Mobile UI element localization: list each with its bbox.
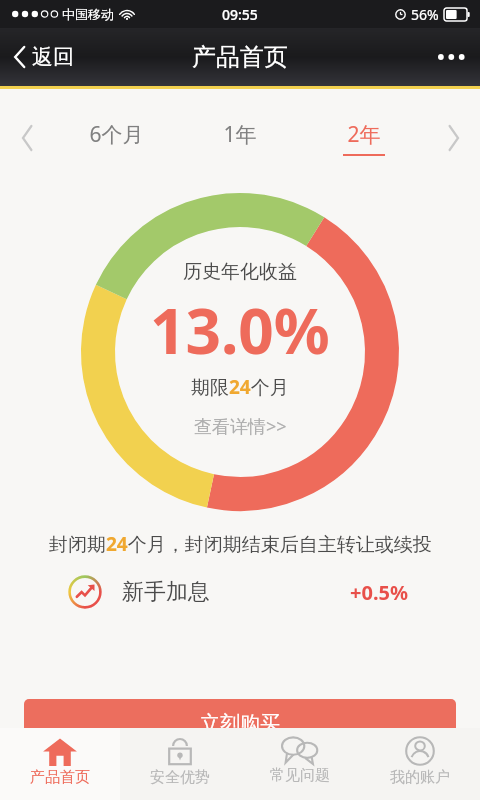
staticText: 产品首页 [30, 768, 90, 787]
staticText: 13.0% [150, 288, 330, 372]
staticText: 历史年化收益 [183, 260, 297, 284]
button[interactable]: 产品首页 [0, 728, 120, 800]
button[interactable]: 6个月 [54, 115, 178, 161]
button[interactable]: 我的账户 [360, 728, 480, 800]
staticText: +0.5% [350, 579, 408, 606]
staticText: 常见问题 [270, 766, 330, 785]
staticText: 返回 [32, 44, 74, 70]
staticText: 新手加息 [122, 578, 210, 606]
button[interactable]: 1年 [178, 115, 302, 161]
staticText: 56% [411, 5, 439, 24]
staticText: 2年 [347, 120, 381, 149]
staticText: 安全优势 [150, 768, 210, 787]
staticText: 中国移动 [62, 6, 114, 22]
staticText: 封闭期24个月，封闭期结束后自主转让或续投 [49, 531, 432, 557]
button[interactable]: More options [422, 38, 480, 76]
button[interactable]: 返回 [0, 36, 88, 78]
button[interactable]: 立刻购买 [24, 699, 456, 747]
button[interactable]: Previous [0, 115, 54, 161]
button[interactable]: 2年 [302, 115, 426, 161]
button[interactable]: 常见问题 [240, 728, 360, 800]
staticText: 09:55 [222, 5, 258, 24]
staticText: 我的账户 [390, 768, 450, 787]
button[interactable]: 查看详情>> [186, 412, 295, 441]
staticText: 立刻购买 [200, 711, 280, 736]
staticText: 查看详情>> [194, 414, 287, 439]
staticText: 产品首页 [192, 42, 288, 72]
staticText: 1年 [223, 120, 257, 149]
staticText: 6个月 [89, 120, 144, 149]
button[interactable]: 安全优势 [120, 728, 240, 800]
button[interactable]: Next [426, 115, 480, 161]
staticText: 期限24个月 [191, 374, 289, 400]
